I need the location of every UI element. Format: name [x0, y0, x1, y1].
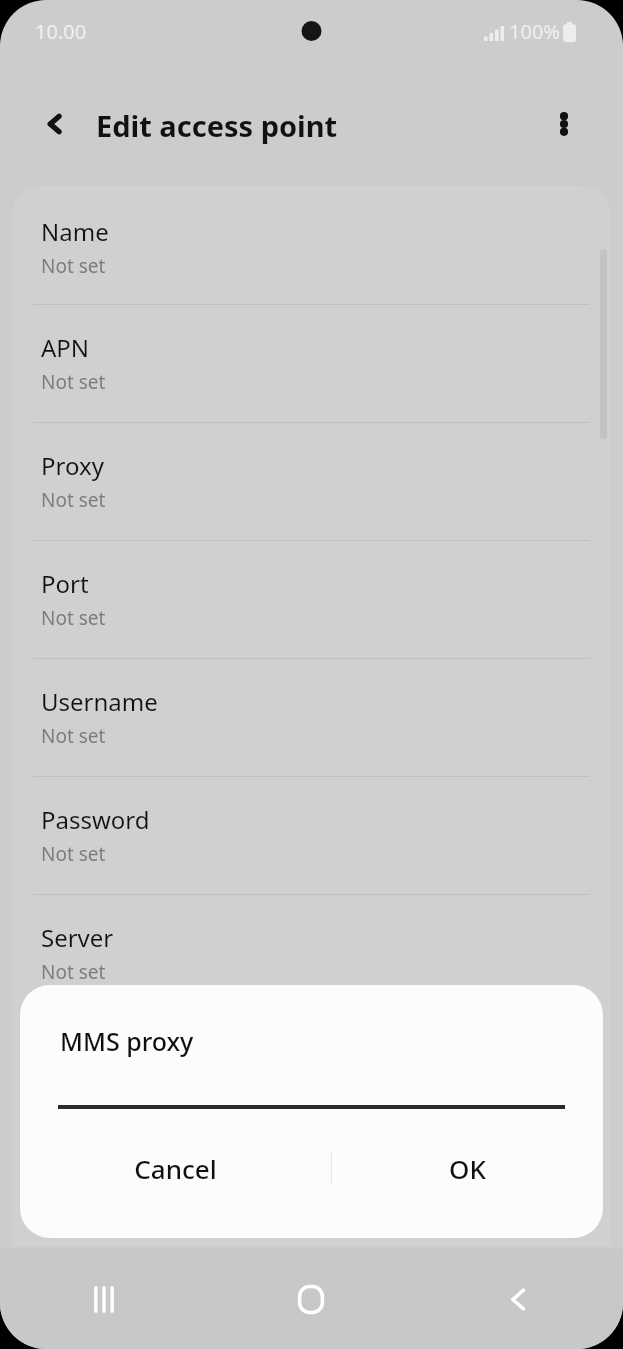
button[interactable]: APN: [12, 304, 611, 422]
button[interactable]: Back: [415, 1249, 623, 1349]
staticText: OK: [449, 1151, 486, 1186]
staticText: Not set: [41, 369, 106, 395]
staticText: Proxy: [41, 449, 104, 482]
staticText: MMS proxy: [60, 1024, 194, 1058]
button[interactable]: More options: [537, 97, 591, 151]
staticText: Not set: [41, 253, 106, 279]
button[interactable]: Password: [12, 776, 611, 894]
button[interactable]: Cancel: [20, 1133, 331, 1203]
staticText: Edit access point: [96, 106, 338, 145]
staticText: Not set: [41, 487, 106, 513]
staticText: MMSC: [41, 1039, 113, 1072]
button[interactable]: Server: [12, 894, 611, 1012]
staticText: 100%: [509, 18, 560, 45]
button[interactable]: MMSC: [12, 1012, 611, 1130]
staticText: Not set: [41, 605, 106, 631]
staticText: Not set: [41, 959, 106, 985]
button[interactable]: OK: [332, 1133, 603, 1203]
button[interactable]: Back: [28, 96, 84, 152]
staticText: Name: [41, 215, 109, 248]
staticText: 10.00: [35, 18, 87, 45]
staticText: Username: [41, 685, 158, 718]
button[interactable]: Proxy: [12, 422, 611, 540]
button[interactable]: Port: [12, 540, 611, 658]
staticText: Server: [41, 921, 114, 954]
staticText: Cancel: [134, 1151, 217, 1186]
button[interactable]: Name: [12, 186, 611, 304]
staticText: APN: [41, 331, 90, 364]
staticText: Port: [41, 567, 89, 600]
button[interactable]: Home: [207, 1249, 415, 1349]
staticText: Not set: [41, 723, 106, 749]
button[interactable]: Username: [12, 658, 611, 776]
button[interactable]: Recent apps: [0, 1249, 207, 1349]
staticText: Password: [41, 803, 150, 836]
staticText: Not set: [41, 841, 106, 867]
